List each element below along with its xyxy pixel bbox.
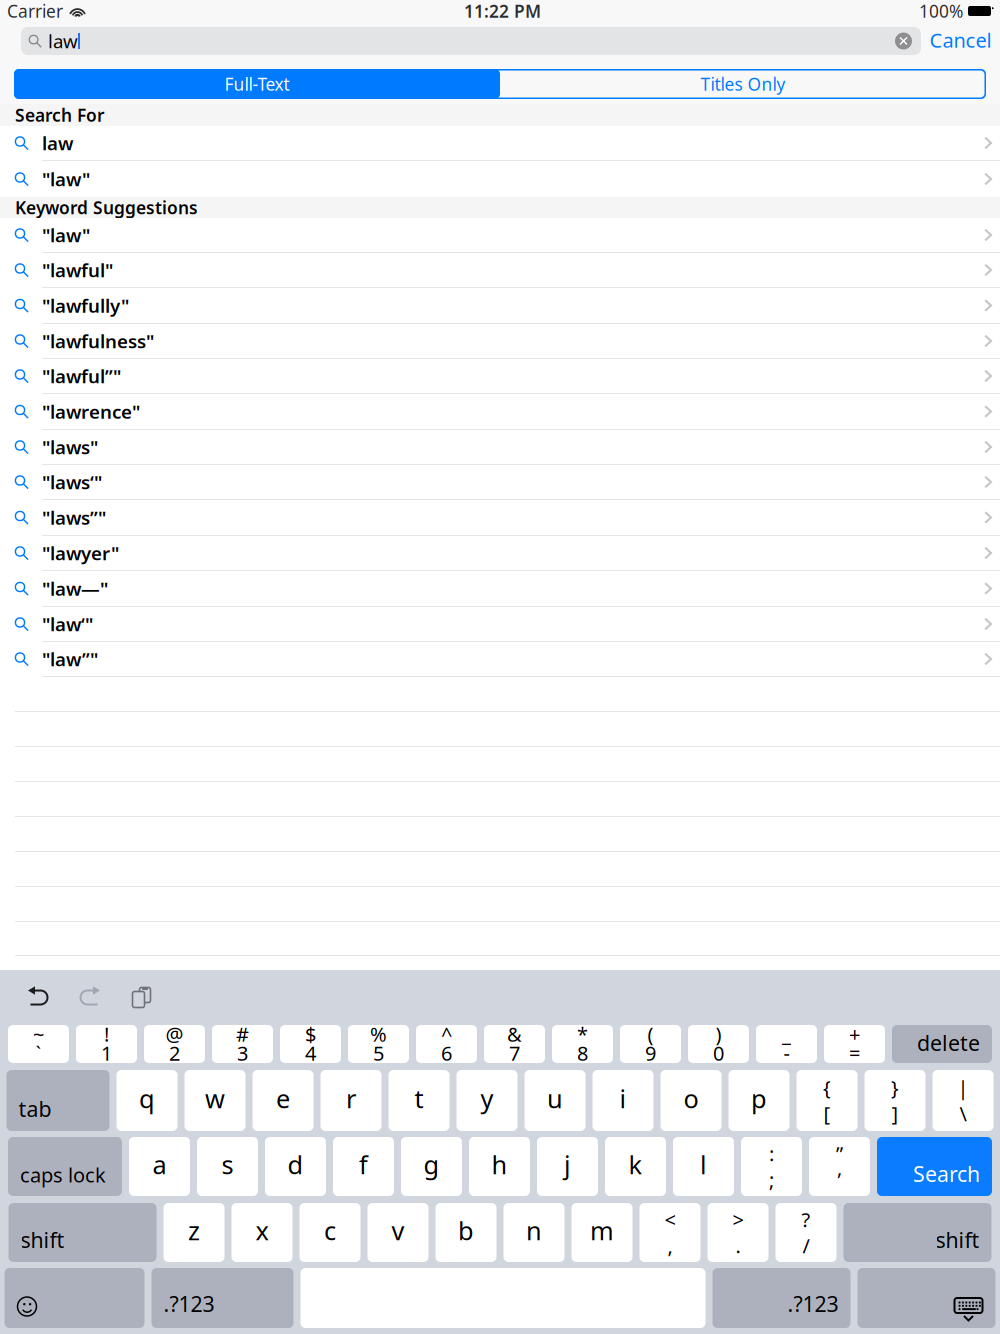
staticText: 8: [577, 1040, 588, 1066]
button[interactable]: "lawfully": [0, 288, 1000, 323]
button[interactable]: ^: [416, 1025, 477, 1063]
staticText: #: [236, 1021, 249, 1047]
button[interactable]: Redo: [64, 980, 116, 1014]
staticText: [: [823, 1100, 830, 1127]
button[interactable]: }: [864, 1070, 925, 1131]
button[interactable]: c: [299, 1203, 360, 1262]
button[interactable]: "lawfulness": [0, 324, 1000, 358]
button[interactable]: Search: [877, 1137, 992, 1196]
button[interactable]: r: [320, 1070, 381, 1131]
button[interactable]: *: [552, 1025, 613, 1063]
button[interactable]: Cancel: [921, 27, 1000, 55]
button[interactable]: "law‘": [0, 607, 1000, 641]
staticText: 0: [713, 1040, 724, 1066]
staticText: ;: [769, 1166, 774, 1193]
button[interactable]: h: [469, 1137, 530, 1196]
staticText: r: [346, 1082, 356, 1115]
button[interactable]: j: [537, 1137, 598, 1196]
button[interactable]: |: [932, 1070, 993, 1131]
staticText: 6: [441, 1040, 452, 1066]
button[interactable]: x: [231, 1203, 292, 1262]
button[interactable]: Emoji: [4, 1268, 144, 1328]
button[interactable]: shift: [8, 1203, 156, 1262]
staticText: :: [769, 1140, 774, 1167]
button[interactable]: >: [707, 1203, 768, 1262]
button[interactable]: :: [741, 1137, 802, 1196]
button[interactable]: "law": [0, 161, 1000, 197]
staticText: 1: [101, 1040, 112, 1066]
button[interactable]: @: [144, 1025, 205, 1063]
button[interactable]: $: [280, 1025, 341, 1063]
button[interactable]: l: [673, 1137, 734, 1196]
button[interactable]: "lawrence": [0, 394, 1000, 429]
button[interactable]: !: [76, 1025, 137, 1063]
staticText: b: [458, 1214, 474, 1247]
button[interactable]: Undo: [12, 980, 64, 1014]
button[interactable]: w: [184, 1070, 245, 1131]
button[interactable]: "laws‘": [0, 465, 1000, 499]
button[interactable]: (: [620, 1025, 681, 1063]
button[interactable]: ~: [8, 1025, 69, 1063]
button[interactable]: #: [212, 1025, 273, 1063]
button[interactable]: .?123: [712, 1268, 850, 1328]
staticText: Search For: [15, 103, 105, 126]
button[interactable]: q: [116, 1070, 177, 1131]
button[interactable]: +: [824, 1025, 885, 1063]
button[interactable]: d: [265, 1137, 326, 1196]
button[interactable]: e: [252, 1070, 313, 1131]
button[interactable]: i: [592, 1070, 653, 1131]
button[interactable]: k: [605, 1137, 666, 1196]
button[interactable]: Hide Keyboard: [857, 1268, 995, 1328]
button[interactable]: u: [524, 1070, 585, 1131]
button[interactable]: "laws”": [0, 500, 1000, 535]
staticText: 5: [373, 1040, 384, 1066]
staticText: ~: [33, 1021, 44, 1047]
button[interactable]: ”: [809, 1137, 870, 1196]
button[interactable]: "law": [0, 218, 1000, 252]
button[interactable]: v: [367, 1203, 428, 1262]
button[interactable]: m: [571, 1203, 632, 1262]
button[interactable]: a: [129, 1137, 190, 1196]
button[interactable]: f: [333, 1137, 394, 1196]
staticText: <: [664, 1206, 675, 1233]
button[interactable]: z: [163, 1203, 224, 1262]
button[interactable]: "law—": [0, 571, 1000, 606]
button[interactable]: caps lock: [8, 1137, 122, 1196]
button[interactable]: law: [0, 126, 1000, 160]
button[interactable]: o: [660, 1070, 721, 1131]
staticText: tab: [18, 1095, 51, 1123]
button[interactable]: Full-Text: [14, 69, 500, 99]
staticText: 2: [169, 1040, 180, 1066]
button[interactable]: Paste: [116, 980, 168, 1014]
button[interactable]: tab: [6, 1070, 109, 1131]
button[interactable]: "lawyer": [0, 536, 1000, 570]
button[interactable]: "lawful": [0, 253, 1000, 287]
button[interactable]: <: [639, 1203, 700, 1262]
staticText: .?123: [163, 1290, 214, 1318]
button[interactable]: p: [728, 1070, 789, 1131]
button[interactable]: ?: [775, 1203, 836, 1262]
button[interactable]: "law”": [0, 642, 1000, 676]
button[interactable]: _: [756, 1025, 817, 1063]
button[interactable]: g: [401, 1137, 462, 1196]
button[interactable]: s: [197, 1137, 258, 1196]
button[interactable]: &: [484, 1025, 545, 1063]
staticText: @: [165, 1021, 183, 1047]
staticText: "lawful": [42, 258, 113, 282]
button[interactable]: y: [456, 1070, 517, 1131]
button[interactable]: %: [348, 1025, 409, 1063]
button[interactable]: Titles Only: [500, 69, 986, 99]
button[interactable]: b: [435, 1203, 496, 1262]
staticText: Carrier: [7, 0, 63, 22]
button[interactable]: .?123: [151, 1268, 293, 1328]
button[interactable]: "laws": [0, 430, 1000, 464]
button[interactable]: shift: [843, 1203, 991, 1262]
button[interactable]: ): [688, 1025, 749, 1063]
button[interactable]: {: [796, 1070, 857, 1131]
button[interactable]: n: [503, 1203, 564, 1262]
button[interactable]: t: [388, 1070, 449, 1131]
button[interactable]: delete: [892, 1025, 992, 1063]
button[interactable]: "lawful”": [0, 359, 1000, 393]
staticText: \: [959, 1100, 966, 1127]
